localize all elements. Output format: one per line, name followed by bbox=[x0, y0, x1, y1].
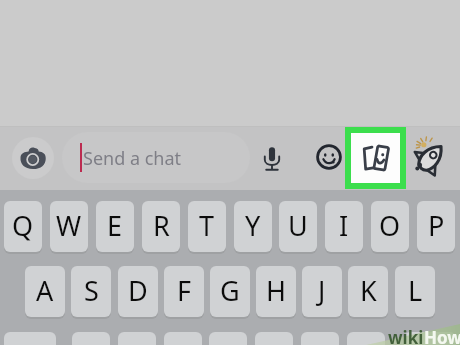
button[interactable]: D bbox=[118, 266, 158, 317]
staticText: T bbox=[199, 207, 215, 244]
button[interactable]: Shift bbox=[4, 332, 56, 345]
staticText: R bbox=[153, 207, 170, 244]
staticText: F bbox=[177, 272, 192, 309]
button[interactable] bbox=[347, 332, 385, 345]
staticText: J bbox=[318, 272, 326, 309]
button[interactable]: F bbox=[164, 266, 204, 317]
button[interactable] bbox=[164, 332, 202, 345]
button[interactable]: Y bbox=[234, 201, 272, 252]
staticText: G bbox=[220, 272, 240, 309]
button[interactable] bbox=[209, 332, 247, 345]
button[interactable] bbox=[118, 332, 156, 345]
button[interactable]: O bbox=[371, 201, 409, 252]
button[interactable]: L bbox=[395, 266, 435, 317]
button[interactable]: U bbox=[279, 201, 317, 252]
staticText: L bbox=[408, 272, 423, 309]
staticText: Q bbox=[12, 207, 34, 244]
button[interactable]: Q bbox=[4, 201, 42, 252]
button[interactable]: Stickers bbox=[351, 133, 400, 183]
staticText: K bbox=[360, 272, 377, 309]
staticText: H bbox=[266, 272, 287, 309]
button[interactable]: Rocket bbox=[410, 133, 448, 177]
button[interactable]: W bbox=[50, 201, 88, 252]
button[interactable]: Send a chat bbox=[62, 132, 250, 183]
staticText: U bbox=[288, 207, 308, 244]
staticText: W bbox=[56, 207, 82, 244]
button[interactable]: Voice message bbox=[255, 141, 289, 175]
button[interactable]: Backspace bbox=[404, 332, 456, 345]
button[interactable]: A bbox=[25, 266, 65, 317]
staticText: O bbox=[379, 207, 401, 244]
staticText: How bbox=[424, 326, 460, 345]
button[interactable]: H bbox=[256, 266, 296, 317]
button[interactable]: E bbox=[96, 201, 134, 252]
button[interactable] bbox=[301, 332, 339, 345]
button[interactable] bbox=[72, 332, 110, 345]
button[interactable] bbox=[255, 332, 293, 345]
staticText: A bbox=[36, 272, 54, 309]
staticText: I bbox=[339, 207, 349, 244]
staticText: E bbox=[107, 207, 123, 244]
button[interactable]: J bbox=[302, 266, 342, 317]
button[interactable]: Camera bbox=[12, 137, 54, 179]
button[interactable]: G bbox=[210, 266, 250, 317]
button[interactable]: S bbox=[71, 266, 111, 317]
button[interactable]: I bbox=[325, 201, 363, 252]
staticText: S bbox=[84, 272, 99, 309]
staticText: wiki bbox=[388, 326, 424, 345]
staticText: D bbox=[128, 272, 148, 309]
staticText: Send a chat bbox=[83, 146, 182, 171]
staticText: Y bbox=[245, 207, 261, 244]
button[interactable]: P bbox=[417, 201, 455, 252]
button[interactable]: T bbox=[188, 201, 226, 252]
button[interactable]: K bbox=[348, 266, 388, 317]
staticText: P bbox=[428, 207, 445, 244]
button[interactable]: Emoji bbox=[312, 140, 346, 174]
button[interactable]: R bbox=[142, 201, 180, 252]
